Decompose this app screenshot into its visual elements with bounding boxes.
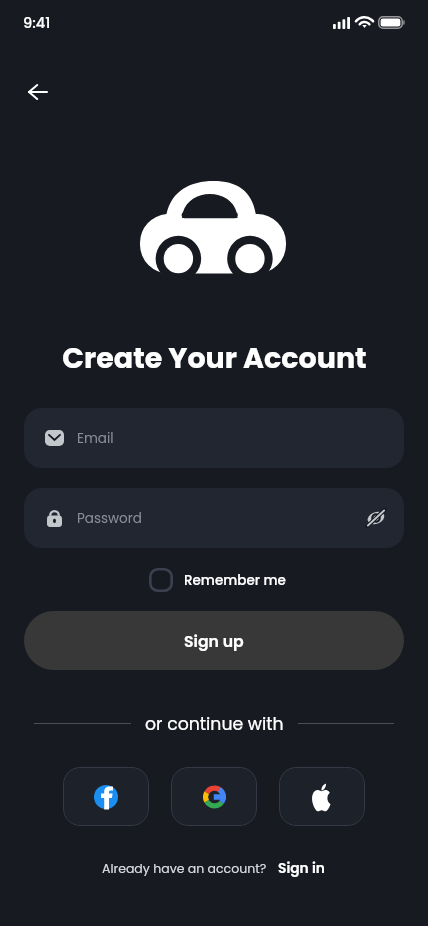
staticText: Create Your Account [62, 338, 367, 378]
button[interactable]: Continue with Facebook [63, 767, 149, 826]
button[interactable]: Continue with Google [171, 767, 257, 826]
staticText: Sign up [184, 631, 244, 653]
button[interactable]: Sign in [267, 857, 327, 880]
button[interactable]: Remember me [141, 562, 294, 598]
button[interactable]: Email [24, 408, 404, 468]
staticText: Sign in [278, 859, 325, 878]
button[interactable]: Continue with Apple [279, 767, 365, 826]
staticText: Email [77, 429, 114, 448]
staticText: 9:41 [23, 13, 51, 33]
button[interactable]: Show password [361, 503, 391, 533]
button[interactable]: Sign up [24, 611, 404, 670]
staticText: Remember me [184, 571, 286, 590]
button[interactable]: Password [24, 488, 404, 548]
button[interactable]: Back [14, 68, 62, 116]
staticText: or continue with [145, 712, 284, 736]
staticText: Password [77, 509, 142, 528]
staticText: Already have an account? [102, 860, 267, 877]
